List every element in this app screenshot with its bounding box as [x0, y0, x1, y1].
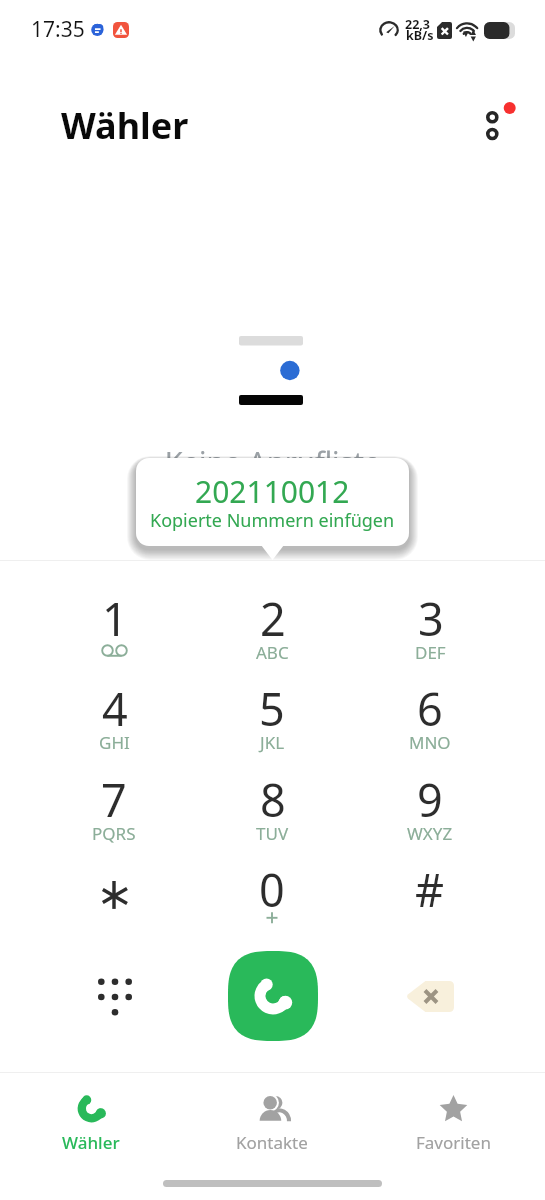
button[interactable]: 9 — [355, 769, 505, 857]
staticText: JKL — [260, 731, 285, 754]
staticText: 7 — [101, 769, 127, 830]
staticText: 4 — [102, 678, 128, 739]
button[interactable]: 7 — [39, 769, 189, 857]
button[interactable]: 2 — [197, 588, 347, 676]
button[interactable]: 5 — [197, 678, 347, 766]
staticText: 0 — [259, 859, 285, 920]
staticText: ABC — [256, 641, 289, 664]
staticText: GHI — [99, 731, 130, 754]
button[interactable]: 6 — [355, 678, 505, 766]
staticText: WXYZ — [407, 822, 453, 845]
button[interactable]: 4 — [39, 678, 189, 766]
button[interactable]: Hide dialpad — [74, 956, 154, 1036]
staticText: Favoriten — [416, 1131, 491, 1154]
staticText: 9 — [417, 769, 443, 830]
staticText: 1 — [102, 588, 128, 649]
button[interactable]: Kontakte — [190, 1078, 354, 1170]
staticText: 22,3 — [405, 16, 431, 33]
button[interactable]: 1 — [39, 588, 189, 676]
staticText: 8 — [260, 769, 286, 830]
button[interactable]: Wähler — [9, 1078, 173, 1170]
button[interactable]: Call — [228, 951, 318, 1041]
staticText: Kontakte — [236, 1131, 308, 1154]
button[interactable]: # — [355, 859, 505, 947]
button[interactable] — [39, 859, 189, 947]
button[interactable]: 3 — [355, 588, 505, 676]
staticText: PQRS — [92, 822, 136, 845]
staticText: 6 — [417, 678, 443, 739]
button[interactable]: Backspace — [390, 956, 470, 1036]
button[interactable]: 0 — [197, 859, 347, 947]
staticText: 5 — [259, 678, 285, 739]
staticText: 2 — [260, 588, 286, 649]
staticText: MNO — [409, 731, 451, 754]
staticText: Keine Anrufliste — [0, 442, 545, 481]
staticText: 17:35 — [31, 15, 85, 44]
staticText: 3 — [418, 588, 444, 649]
staticText: DEF — [415, 641, 446, 664]
staticText: 202110012 — [195, 471, 350, 512]
staticText: Wähler — [62, 1131, 120, 1154]
button[interactable]: 202110012 — [136, 458, 409, 546]
staticText: Kopierte Nummern einfügen — [150, 508, 395, 533]
staticText: kB/s — [406, 27, 434, 44]
button[interactable]: Favoriten — [371, 1078, 535, 1170]
button[interactable]: 8 — [197, 769, 347, 857]
staticText: # — [415, 859, 445, 920]
staticText: Wähler — [61, 101, 189, 150]
staticText: TUV — [256, 822, 289, 845]
button[interactable]: More options — [460, 88, 528, 156]
